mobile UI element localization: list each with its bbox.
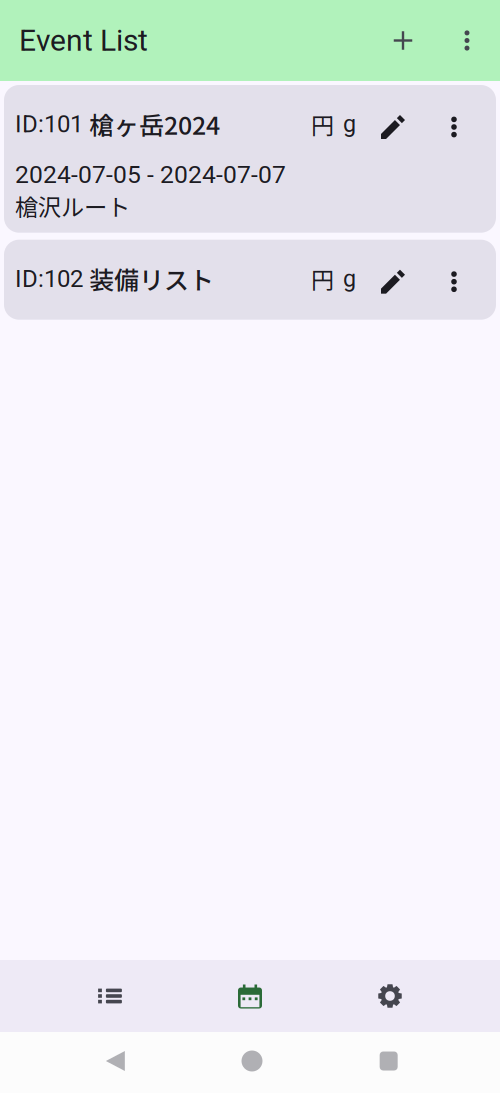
staticText: g	[343, 110, 356, 138]
staticText: 円	[311, 107, 334, 141]
button[interactable]: Edit	[373, 259, 413, 299]
button[interactable]: Calendar	[180, 960, 320, 1032]
button[interactable]: More options	[440, 104, 468, 144]
button[interactable]: More options	[440, 259, 468, 299]
button[interactable]: List	[40, 960, 180, 1032]
button[interactable]: Settings	[320, 960, 460, 1032]
staticText: 2024-07-05 - 2024-07-07	[15, 160, 286, 189]
button[interactable]: Edit	[373, 104, 413, 144]
staticText: 円	[311, 262, 334, 296]
staticText: Event List	[19, 23, 148, 58]
staticText: ID:102	[15, 265, 89, 293]
staticText: ID:101	[15, 110, 89, 138]
staticText: 装備リスト	[89, 261, 214, 297]
staticText: g	[343, 265, 356, 292]
staticText: 槍沢ルート	[15, 189, 130, 223]
staticText: 槍ヶ岳2024	[89, 106, 220, 142]
button[interactable]: Add event	[379, 13, 427, 67]
button[interactable]: More options	[450, 13, 484, 67]
